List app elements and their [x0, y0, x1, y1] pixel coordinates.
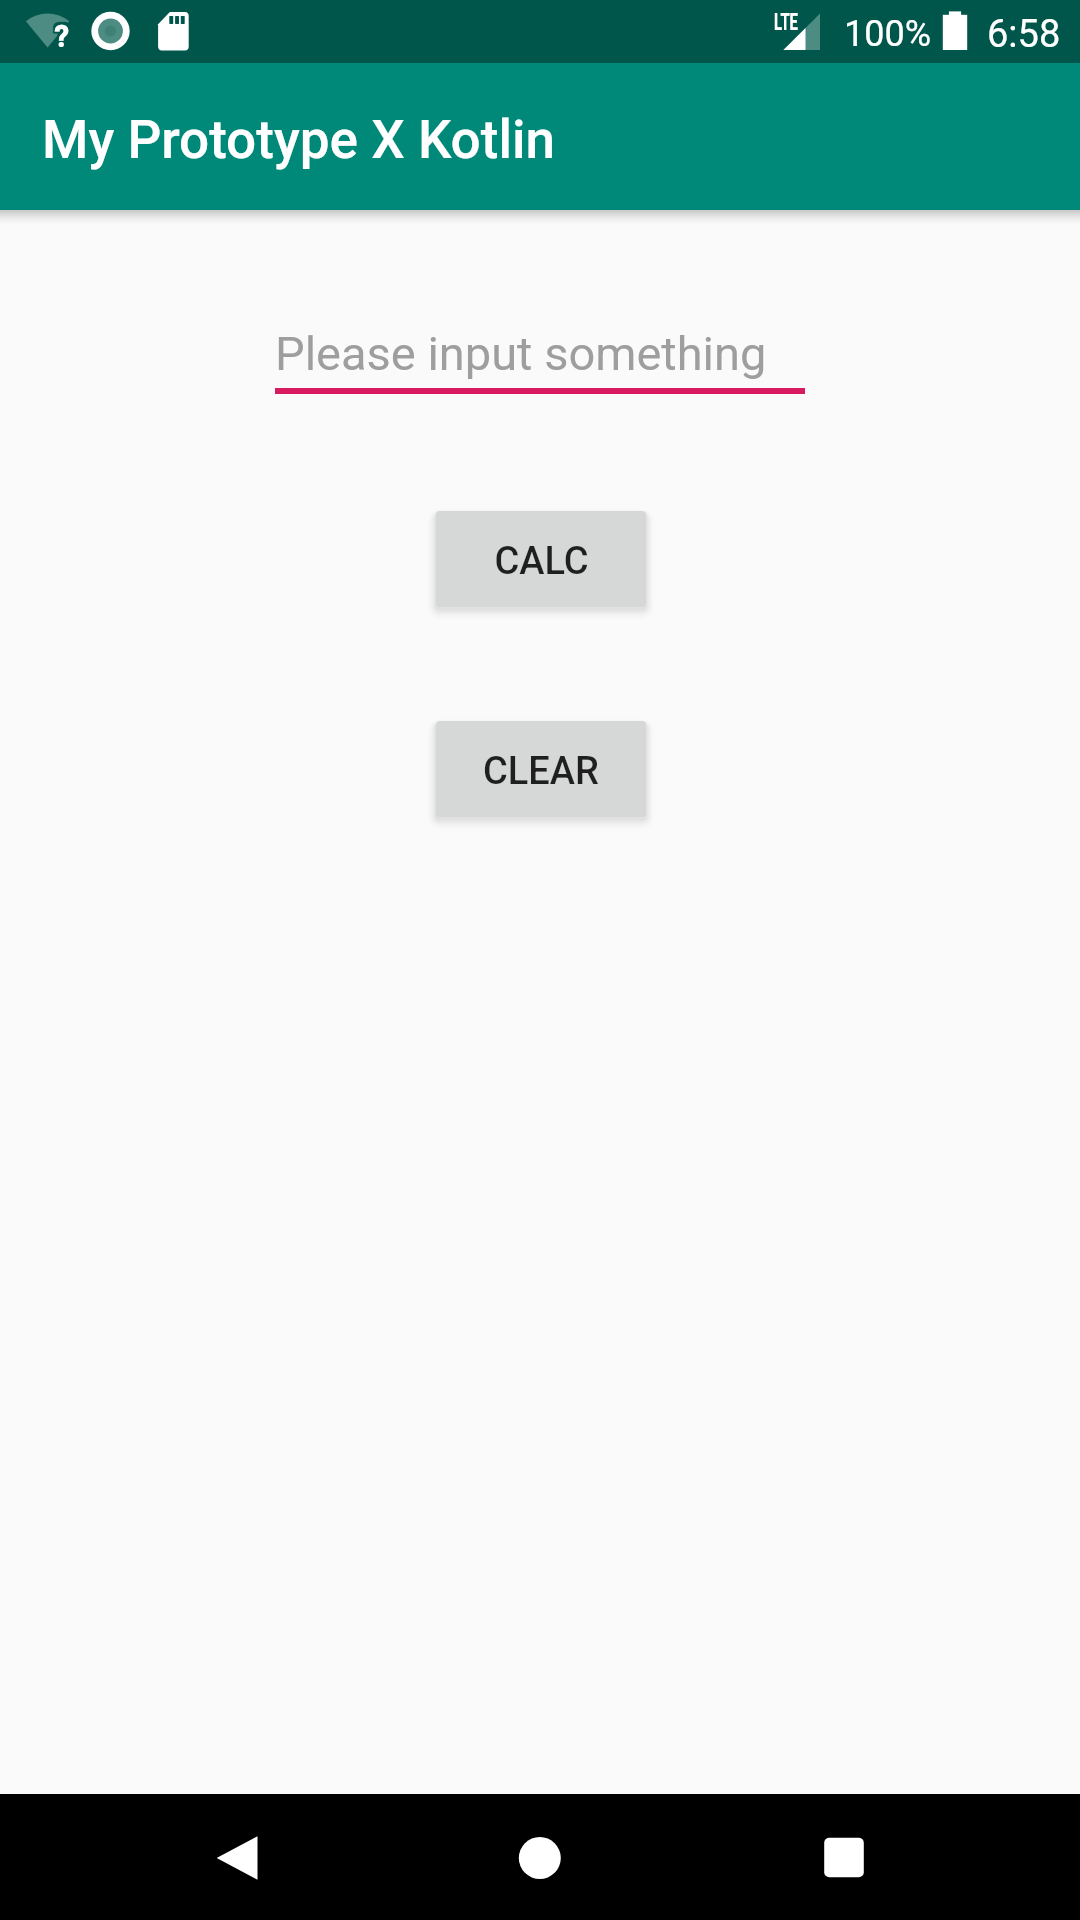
- staticText: 100%: [844, 13, 932, 55]
- staticText: ?: [52, 22, 67, 56]
- button[interactable]: CALC: [436, 511, 646, 607]
- staticText: CALC: [494, 539, 589, 584]
- staticText: ?: [57, 22, 72, 56]
- staticText: ?: [54, 22, 69, 56]
- staticText: ?: [52, 17, 67, 51]
- button[interactable]: Recent apps: [804, 1818, 884, 1898]
- button[interactable]: Home: [500, 1818, 580, 1898]
- staticText: ?: [57, 17, 72, 51]
- button[interactable]: Back: [198, 1818, 278, 1898]
- staticText: Please input something: [275, 326, 767, 381]
- staticText: ?: [52, 20, 67, 54]
- staticText: LTE: [774, 8, 798, 36]
- staticText: My Prototype X Kotlin: [42, 109, 556, 171]
- button[interactable]: Please input something: [275, 323, 805, 394]
- staticText: CLEAR: [483, 749, 599, 794]
- staticText: ?: [54, 20, 69, 54]
- button[interactable]: CLEAR: [436, 721, 646, 817]
- staticText: 6:58: [987, 12, 1061, 57]
- staticText: ?: [54, 17, 69, 51]
- staticText: ?: [57, 20, 72, 54]
